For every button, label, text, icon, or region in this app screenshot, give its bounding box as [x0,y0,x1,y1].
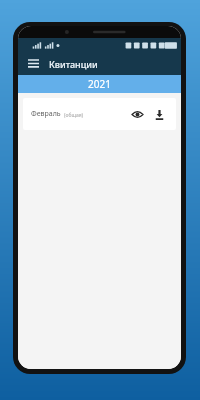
staticText: 2021 [88,77,111,91]
button[interactable]: Open navigation menu [25,56,41,72]
staticText: Квитанции [49,58,98,70]
staticText: (общая) [64,112,84,119]
button[interactable]: Февраль [23,98,176,130]
staticText: Февраль [31,109,61,119]
button[interactable]: 2021 [18,75,181,93]
button[interactable]: View receipt [128,105,146,123]
button[interactable]: Download receipt [150,105,168,123]
